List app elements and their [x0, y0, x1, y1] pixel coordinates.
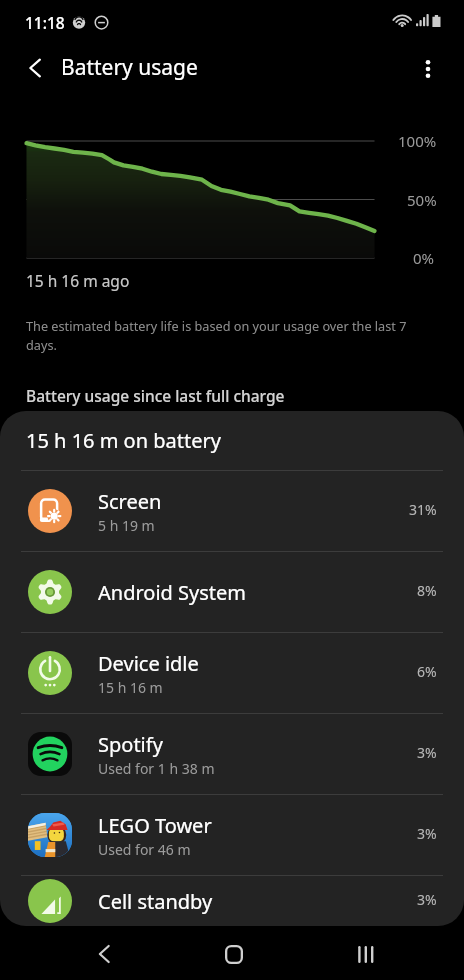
staticText: 11:18 [25, 12, 65, 33]
button[interactable]: Back [72, 927, 136, 980]
staticText: Spotify [98, 731, 163, 758]
button[interactable]: Screen [0, 471, 464, 551]
staticText: Cell standby [98, 888, 213, 915]
button[interactable]: Android System [0, 552, 464, 632]
button[interactable]: Cell standby [0, 876, 464, 926]
staticText: Used for 1 h 38 m [98, 759, 215, 778]
staticText: 6% [417, 662, 437, 681]
staticText: 8% [417, 581, 437, 600]
staticText: 31% [409, 500, 437, 519]
button[interactable]: Recent apps [332, 927, 396, 980]
button[interactable]: LEGO Tower [0, 795, 464, 875]
staticText: Screen [98, 488, 162, 515]
staticText: Android System [98, 579, 247, 606]
staticText: 0% [413, 248, 435, 268]
staticText: Battery usage [61, 53, 198, 82]
button[interactable]: Device idle [0, 633, 464, 713]
button[interactable]: Back [13, 45, 59, 91]
staticText: 3% [417, 743, 437, 762]
staticText: 3% [417, 824, 437, 843]
staticText: 15 h 16 m ago [26, 270, 130, 291]
staticText: 50% [407, 190, 437, 210]
staticText: 100% [398, 131, 437, 151]
staticText: 5 h 19 m [98, 516, 155, 535]
button[interactable]: Home [202, 927, 266, 980]
staticText: Battery usage since last full charge [26, 385, 285, 406]
staticText: Used for 46 m [98, 840, 191, 859]
staticText: 15 h 16 m on battery [26, 427, 221, 454]
staticText: Device idle [98, 650, 199, 677]
staticText: 3% [417, 890, 437, 909]
staticText: LEGO Tower [98, 812, 212, 839]
button[interactable]: More options [405, 46, 451, 92]
button[interactable]: Spotify [0, 714, 464, 794]
staticText: The estimated battery life is based on y… [26, 317, 416, 354]
staticText: 15 h 16 m [98, 678, 163, 697]
